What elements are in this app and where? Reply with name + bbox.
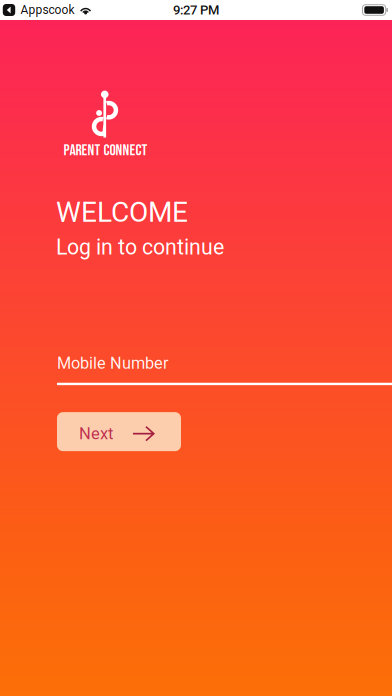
staticText: 9:27 PM <box>173 2 219 18</box>
staticText: Log in to continue <box>56 235 224 260</box>
button[interactable]: Back to Appscook <box>0 0 75 20</box>
staticText: Next <box>79 424 113 443</box>
button[interactable]: Next <box>57 412 181 451</box>
staticText: PARENT CONNECT <box>63 141 147 160</box>
staticText: WELCOME <box>56 196 188 229</box>
staticText: Mobile Number <box>57 354 169 373</box>
staticText: Appscook <box>21 3 75 17</box>
